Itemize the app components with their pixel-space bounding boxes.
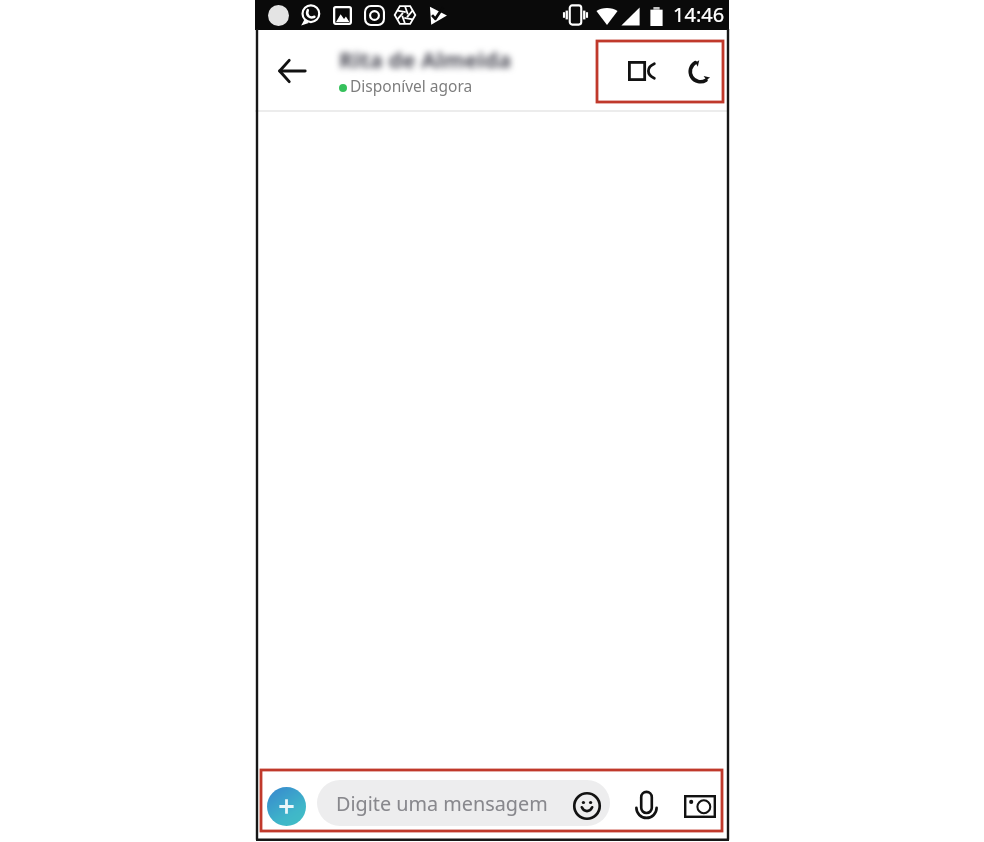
staticText: Digite uma mensagem bbox=[336, 790, 548, 817]
staticText: Rita de Almeida bbox=[339, 44, 512, 74]
button[interactable]: Voice message bbox=[626, 785, 666, 825]
staticText: 14:46 bbox=[673, 1, 725, 28]
button[interactable]: Video call bbox=[619, 48, 665, 94]
button[interactable]: Digite uma mensagem bbox=[317, 780, 610, 826]
button[interactable]: Emoji bbox=[567, 786, 607, 826]
staticText: Disponível agora bbox=[350, 75, 473, 96]
button[interactable]: Voice call bbox=[677, 48, 723, 94]
button[interactable]: Back bbox=[269, 48, 315, 94]
button[interactable]: Camera bbox=[680, 786, 720, 826]
button[interactable]: Add attachment bbox=[267, 787, 306, 826]
